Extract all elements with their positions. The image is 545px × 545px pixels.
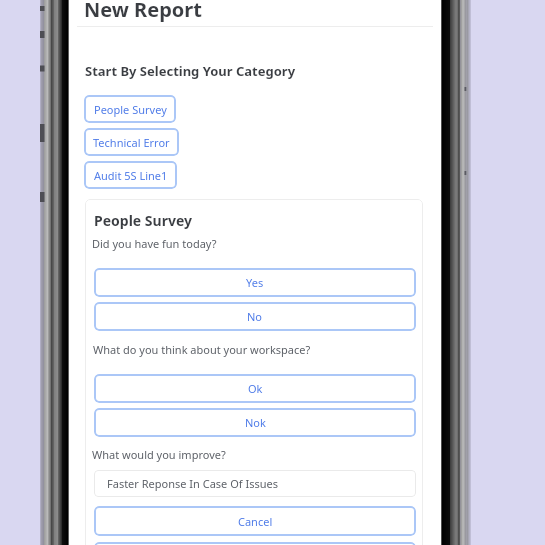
staticText: Ok xyxy=(248,381,263,396)
staticText: Cancel xyxy=(238,514,273,529)
button[interactable]: Nok xyxy=(94,408,416,437)
button[interactable]: No xyxy=(94,302,416,331)
button[interactable]: Faster Reponse In Case Of Issues xyxy=(94,470,416,497)
staticText: No xyxy=(247,309,263,324)
staticText: Faster Reponse In Case Of Issues xyxy=(107,476,278,491)
staticText: Nok xyxy=(245,415,266,430)
button[interactable]: Technical Error xyxy=(84,128,179,156)
button[interactable]: Ok xyxy=(94,374,416,403)
staticText: What would you improve? xyxy=(92,447,226,462)
staticText: People Survey xyxy=(94,211,192,230)
staticText: New Report xyxy=(84,0,202,23)
button[interactable]: Cancel xyxy=(94,506,416,536)
button[interactable]: Submit xyxy=(94,542,416,545)
staticText: Yes xyxy=(246,275,264,290)
staticText: Technical Error xyxy=(93,135,170,150)
staticText: People Survey xyxy=(94,102,167,117)
button[interactable]: Yes xyxy=(94,268,416,297)
button[interactable]: People Survey xyxy=(84,95,176,123)
staticText: What do you think about your workspace? xyxy=(93,342,311,357)
staticText: Start By Selecting Your Category xyxy=(85,62,296,80)
staticText: Audit 5S Line1 xyxy=(94,168,168,183)
staticText: Did you have fun today? xyxy=(92,236,217,251)
button[interactable]: Audit 5S Line1 xyxy=(84,161,177,189)
